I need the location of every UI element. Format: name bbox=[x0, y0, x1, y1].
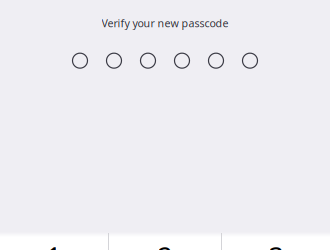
staticText: Verify your new passcode bbox=[101, 16, 228, 30]
button[interactable]: 1 bbox=[0, 232, 108, 250]
button[interactable]: 3 bbox=[222, 232, 330, 250]
staticText: 1 bbox=[46, 239, 61, 250]
button[interactable]: 2 bbox=[109, 232, 221, 250]
staticText: 3 bbox=[269, 239, 284, 250]
staticText: 2 bbox=[158, 239, 173, 250]
